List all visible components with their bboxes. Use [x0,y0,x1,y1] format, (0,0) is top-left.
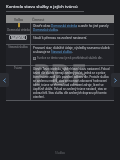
button[interactable]: Volba [6,15,114,23]
staticText: Stavová služba [8,45,28,49]
button[interactable]: Tvůrci [6,66,114,100]
button[interactable]: Next page [111,73,120,87]
staticText: PDF [33,55,87,93]
staticText: Otevře okno Domovská stránka a zavře ho … [33,24,112,32]
staticText: NASTAVENÍ [11,36,25,39]
staticText: Služba [55,151,65,155]
button[interactable]: Stavová služba [6,45,114,65]
staticText: Volba [14,17,23,21]
staticText: Otevře Tvůrci stránku, výběr hlavní stav… [33,67,112,99]
staticText: Domovská stránka [7,28,30,32]
staticText: Činnost [32,17,45,21]
staticText: Kontrola stavu služby a jejích tvůrců [6,4,78,10]
button[interactable]: Previous page [0,73,9,87]
button[interactable]: NASTAVENÍ [6,35,114,44]
staticText: Provozní stav, důležité údaje, výsledky … [33,46,112,54]
staticText: Tvůrci [14,66,22,70]
staticText: Funkce se tímto vrací jen k prohlédnutí … [37,56,103,60]
button[interactable]: Služba [55,151,65,155]
staticText: Slouží k přenosu na zvolené nastavení. [33,36,88,40]
button[interactable]: Domovská stránka [6,23,114,34]
